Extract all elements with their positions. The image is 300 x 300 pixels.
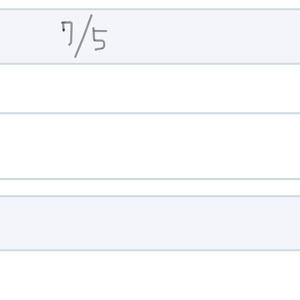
button[interactable] bbox=[0, 250, 300, 300]
button[interactable] bbox=[0, 195, 300, 250]
button[interactable] bbox=[0, 113, 300, 179]
button[interactable]: Date entry 7/5 bbox=[0, 9, 300, 64]
button[interactable] bbox=[0, 64, 300, 113]
button[interactable] bbox=[0, 179, 300, 195]
button[interactable] bbox=[0, 0, 300, 9]
